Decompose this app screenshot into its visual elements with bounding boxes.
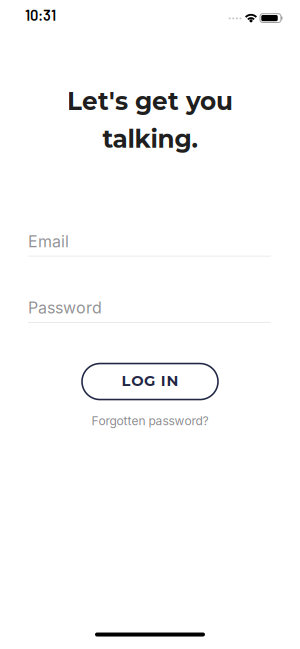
staticText: 10:31	[25, 6, 56, 24]
staticText: Let's get you	[67, 86, 233, 116]
button[interactable]: Password	[28, 298, 271, 323]
button[interactable]: Forgotten password?	[91, 414, 208, 428]
staticText: talking.	[102, 124, 197, 154]
staticText: Email	[28, 232, 69, 251]
button[interactable]: LOG IN	[82, 364, 218, 400]
staticText: Forgotten password?	[91, 414, 208, 428]
staticText: Password	[28, 298, 102, 317]
staticText: LOG IN	[121, 372, 178, 390]
button[interactable]: Email	[28, 232, 271, 257]
